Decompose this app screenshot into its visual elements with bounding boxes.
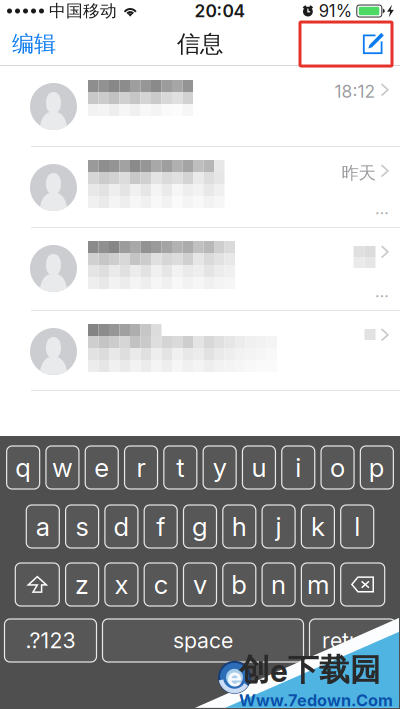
staticText: p [369,452,385,483]
button[interactable]: k [301,505,334,548]
button[interactable]: l [341,505,374,548]
button[interactable]: y [203,446,236,489]
button[interactable]: i [282,446,315,489]
button[interactable]: q [7,446,40,489]
staticText: g [192,511,208,542]
button[interactable]: u [242,446,275,489]
staticText: c [154,569,168,600]
staticText: j [276,511,282,542]
staticText: t [176,452,184,483]
staticText: b [231,569,247,600]
button[interactable]: n [262,563,295,606]
staticText: 91% [319,1,352,21]
staticText: l [354,511,360,542]
button[interactable]: m [301,563,334,606]
staticText: e [94,452,109,483]
button[interactable]: g [183,505,216,548]
staticText: o [330,452,345,483]
staticText: 昨天 [341,162,375,184]
staticText: i [295,452,301,483]
button[interactable]: o [321,446,354,489]
button[interactable]: 昨天 [0,147,400,228]
button[interactable]: .?123 [4,619,96,662]
button[interactable]: space [102,619,303,662]
button[interactable]: 18:12 [0,66,400,147]
staticText: e [227,662,242,693]
button[interactable]: c [144,563,177,606]
staticText: u [251,452,266,483]
staticText: f [156,511,165,542]
staticText: return [322,628,383,653]
staticText: n [271,569,286,600]
button[interactable]: … [0,228,400,311]
button[interactable]: w [46,446,79,489]
button[interactable]: New message [348,22,398,66]
button[interactable]: s [66,505,99,548]
staticText: x [114,569,128,600]
button[interactable]: z [66,563,99,606]
staticText: y [213,452,227,483]
staticText: m [307,569,329,600]
staticText: 信息 [177,29,223,59]
staticText: w [52,452,73,483]
button[interactable]: a [26,505,59,548]
staticText: h [232,511,247,542]
button[interactable]: r [124,446,157,489]
button[interactable]: x [105,563,138,606]
button[interactable]: Delete [341,563,385,606]
staticText: Www.7edown.Com [239,690,393,709]
staticText: v [193,569,207,600]
staticText: q [15,452,31,483]
button[interactable]: return [309,619,395,662]
button[interactable]: d [105,505,138,548]
staticText: … [375,282,389,301]
button[interactable]: e [85,446,118,489]
staticText: 18:12 [334,81,375,102]
button[interactable]: b [223,563,256,606]
staticText: 中国移动 [49,0,117,21]
button[interactable]: f [144,505,177,548]
staticText: space [173,628,233,653]
staticText: a [36,511,50,542]
staticText: 20:04 [194,0,245,21]
staticText: 编辑 [12,30,56,58]
button[interactable]: p [360,446,393,489]
staticText: s [76,511,89,542]
staticText: d [113,511,129,542]
staticText: z [75,569,89,600]
staticText: r [137,452,146,483]
staticText: 创e下载园 [239,651,381,689]
button[interactable]: t [164,446,197,489]
button[interactable] [0,311,400,391]
staticText: .?123 [25,628,75,653]
button[interactable]: v [183,563,216,606]
staticText: k [311,511,325,542]
button[interactable]: Shift [15,563,59,606]
staticText: … [375,199,389,218]
button[interactable]: j [262,505,295,548]
button[interactable]: 编辑 [2,22,66,66]
button[interactable]: h [223,505,256,548]
